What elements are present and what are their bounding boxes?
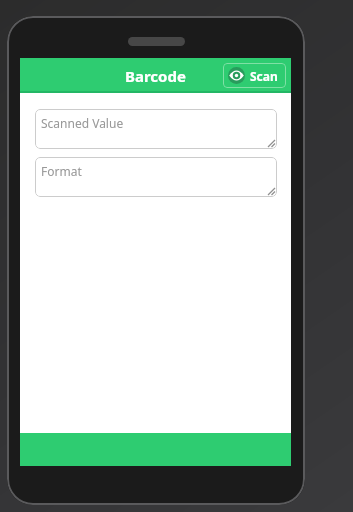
button[interactable]: Scan — [223, 63, 286, 88]
staticText: Scan — [250, 68, 278, 84]
staticText: Format — [41, 163, 82, 179]
staticText: Barcode — [125, 66, 186, 86]
button[interactable]: Format — [35, 157, 277, 197]
staticText: Scanned Value — [41, 115, 124, 131]
button[interactable]: Scanned Value — [35, 109, 277, 149]
